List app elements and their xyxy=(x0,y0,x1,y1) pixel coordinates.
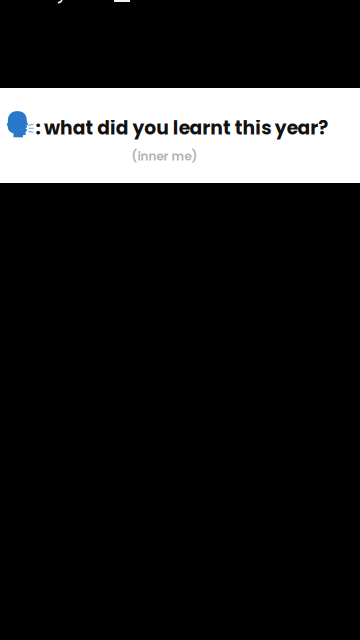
button[interactable]: : what did you learnt this year? xyxy=(0,88,360,183)
staticText: : what did you learnt this year? xyxy=(35,115,328,141)
staticText: (inner me) xyxy=(131,148,197,165)
